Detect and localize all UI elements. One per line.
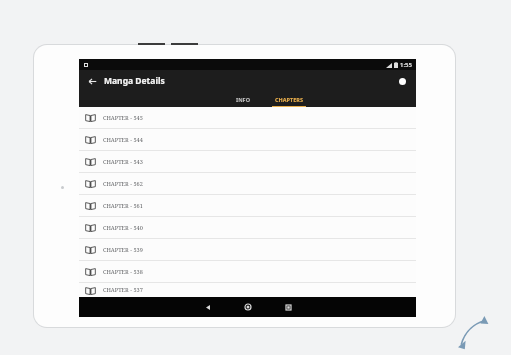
button[interactable]: Back xyxy=(195,297,221,317)
staticText: CHAPTER - 539 xyxy=(103,246,143,254)
staticText: CHAPTER - 543 xyxy=(103,158,143,166)
staticText: CHAPTER - 540 xyxy=(103,224,143,232)
button[interactable]: CHAPTER - 561 xyxy=(79,195,416,216)
button[interactable]: CHAPTERS xyxy=(266,91,312,107)
staticText: CHAPTERS xyxy=(275,96,303,103)
staticText: CHAPTER - 562 xyxy=(103,180,143,188)
staticText: CHAPTER - 538 xyxy=(103,268,143,276)
button[interactable]: CHAPTER - 540 xyxy=(79,217,416,238)
staticText: CHAPTER - 545 xyxy=(103,114,143,122)
button[interactable]: Home xyxy=(235,297,261,317)
staticText: CHAPTER - 537 xyxy=(103,286,143,294)
button[interactable]: Rotate xyxy=(458,312,498,352)
button[interactable]: CHAPTER - 538 xyxy=(79,261,416,282)
button[interactable]: CHAPTER - 562 xyxy=(79,173,416,194)
button[interactable]: CHAPTER - 545 xyxy=(79,107,416,128)
button[interactable]: CHAPTER - 543 xyxy=(79,151,416,172)
button[interactable]: Back xyxy=(84,73,100,89)
staticText: Manga Details xyxy=(104,75,165,87)
button[interactable]: CHAPTER - 544 xyxy=(79,129,416,150)
button[interactable]: INFO xyxy=(220,91,266,107)
button[interactable]: CHAPTER - 537 xyxy=(79,283,416,297)
button[interactable]: More options xyxy=(395,74,409,88)
staticText: 1:55 xyxy=(400,61,412,69)
staticText: CHAPTER - 561 xyxy=(103,202,143,210)
staticText: CHAPTER - 544 xyxy=(103,136,143,144)
button[interactable]: Recents xyxy=(275,297,301,317)
staticText: INFO xyxy=(236,96,250,103)
button[interactable]: CHAPTER - 539 xyxy=(79,239,416,260)
